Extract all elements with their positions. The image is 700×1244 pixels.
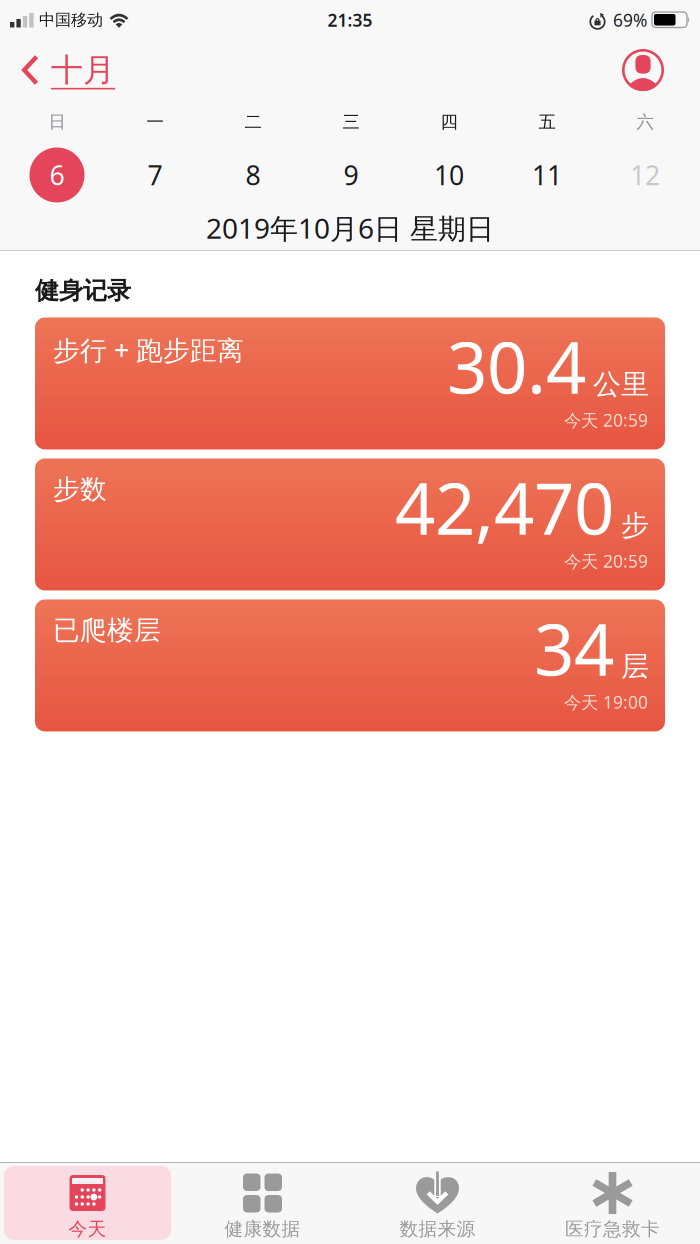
staticText: 12	[630, 157, 660, 193]
staticText: 数据来源	[399, 1217, 475, 1240]
staticText: 42,470	[395, 460, 614, 554]
staticText: 日	[48, 111, 65, 133]
staticText: 69%	[613, 8, 647, 31]
button[interactable]: 步数	[35, 458, 665, 590]
staticText: 三	[342, 111, 359, 133]
staticText: 8	[245, 157, 260, 193]
staticText: 步数	[53, 473, 107, 506]
button[interactable]: 今天	[0, 1163, 175, 1244]
staticText: 6	[49, 157, 64, 193]
staticText: 十月	[51, 50, 115, 90]
staticText: 健康数据	[224, 1217, 300, 1240]
staticText: 30.4	[447, 319, 586, 413]
staticText: 10	[434, 157, 464, 193]
staticText: 六	[636, 111, 653, 133]
staticText: 今天 20:59	[564, 408, 648, 431]
staticText: 步行 + 跑步距离	[53, 332, 244, 367]
button[interactable]: 8	[204, 144, 302, 206]
staticText: 2019年10月6日 星期日	[206, 209, 494, 247]
staticText: 21:35	[327, 8, 372, 31]
staticText: 医疗急救卡	[565, 1217, 660, 1240]
button[interactable]: 9	[302, 144, 400, 206]
staticText: 健身记录	[35, 276, 131, 305]
button[interactable]: 数据来源	[350, 1163, 525, 1244]
staticText: 34	[534, 601, 614, 695]
button[interactable]: 个人资料	[622, 49, 700, 91]
staticText: 层	[621, 649, 649, 684]
button[interactable]: 健康数据	[175, 1163, 350, 1244]
staticText: 11	[532, 157, 562, 193]
staticText: 9	[343, 157, 358, 193]
staticText: 一	[146, 111, 163, 133]
staticText: 已爬楼层	[53, 614, 161, 647]
staticText: 今天 20:59	[564, 549, 648, 572]
button[interactable]: 12	[596, 144, 694, 206]
staticText: 中国移动	[39, 10, 103, 30]
button[interactable]: 十月	[0, 50, 115, 90]
button[interactable]: 7	[106, 144, 204, 206]
staticText: 7	[147, 157, 162, 193]
staticText: 步	[621, 508, 649, 543]
button[interactable]: 10	[400, 144, 498, 206]
button[interactable]: 6	[8, 144, 106, 206]
button[interactable]: 已爬楼层	[35, 599, 665, 731]
button[interactable]: 步行 + 跑步距离	[35, 317, 665, 449]
staticText: 四	[440, 111, 457, 133]
button[interactable]: 医疗急救卡	[525, 1163, 700, 1244]
button[interactable]: 11	[498, 144, 596, 206]
staticText: 今天	[68, 1217, 106, 1240]
staticText: 五	[538, 111, 555, 133]
staticText: 今天 19:00	[564, 690, 648, 713]
staticText: 二	[244, 111, 261, 133]
staticText: 公里	[593, 367, 649, 402]
